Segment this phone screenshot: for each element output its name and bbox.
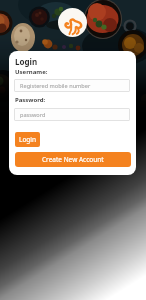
- staticText: password: [20, 111, 46, 119]
- staticText: Registered mobile number: [20, 82, 91, 90]
- button[interactable]: Registered mobile number: [14, 79, 130, 92]
- staticText: Login: [19, 135, 37, 144]
- staticText: Username:: [15, 68, 48, 76]
- staticText: Login: [15, 56, 38, 67]
- button[interactable]: password: [14, 108, 130, 121]
- button[interactable]: Login: [15, 132, 40, 147]
- button[interactable]: Create New Account: [15, 152, 131, 167]
- staticText: Password:: [15, 96, 46, 104]
- staticText: Create New Account: [42, 155, 104, 164]
- button[interactable]: App logo: [58, 8, 87, 37]
